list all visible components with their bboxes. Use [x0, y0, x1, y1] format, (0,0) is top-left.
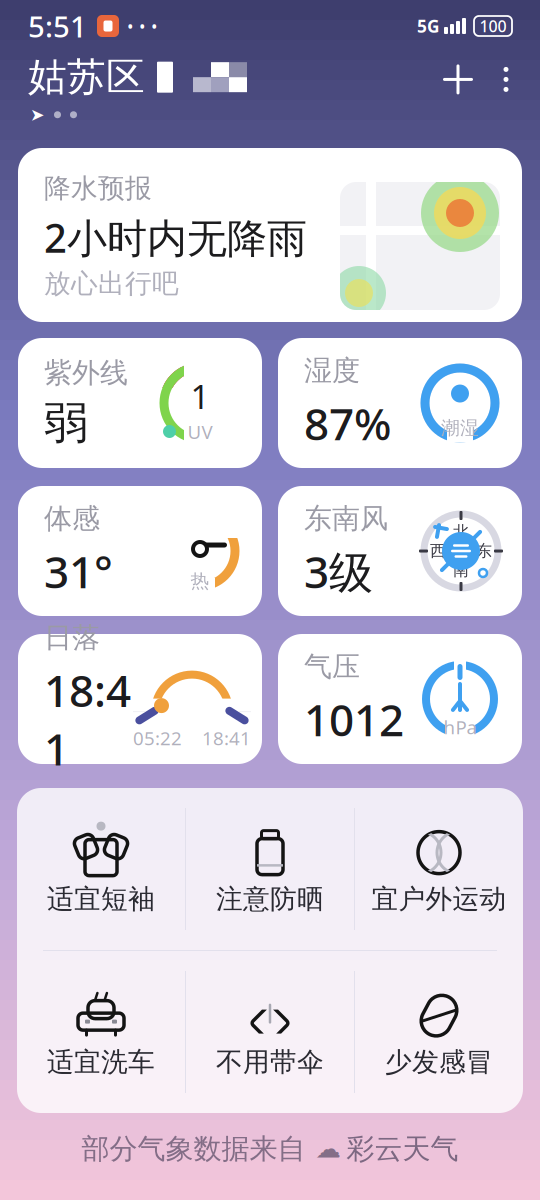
button[interactable]: 日落 [18, 634, 262, 764]
staticText: 北 [453, 522, 469, 542]
staticText: 31° [44, 542, 113, 600]
staticText: 100 [479, 15, 506, 37]
button[interactable]: 紫外线 [18, 338, 262, 468]
staticText: 热 [190, 569, 209, 592]
staticText: 弱 [44, 396, 88, 450]
staticText: 体感 [44, 502, 100, 536]
staticText: • • • [127, 14, 158, 37]
button[interactable]: 注意防晒 [186, 788, 354, 950]
staticText: 东南风 [304, 502, 388, 536]
staticText: 87% [304, 394, 391, 452]
staticText: 彩云天气 [346, 1132, 458, 1166]
staticText: 姑苏区 [28, 53, 145, 101]
staticText: 降水预报 [44, 172, 152, 205]
staticText: 日落 [44, 620, 100, 655]
button[interactable]: More options [484, 53, 528, 105]
staticText: 注意防晒 [216, 883, 324, 915]
button[interactable]: 气压 [278, 634, 522, 764]
staticText: hPa [443, 715, 476, 739]
button[interactable]: 湿度 [278, 338, 522, 468]
staticText: 东 [476, 541, 492, 561]
staticText: 18:41 [202, 726, 251, 750]
button[interactable]: 适宜洗车 [17, 951, 185, 1113]
staticText: 18:41 [44, 661, 131, 778]
staticText: 2小时内无降雨 [44, 211, 307, 264]
staticText: 潮湿 [441, 416, 479, 439]
button[interactable]: 适宜短袖 [17, 788, 185, 950]
staticText: 南 [453, 560, 469, 580]
button[interactable]: 体感 [18, 486, 262, 616]
staticText: 1012 [304, 690, 404, 748]
staticText: 1 [190, 374, 209, 418]
staticText: 气压 [304, 650, 360, 684]
button[interactable]: 东南风 [278, 486, 522, 616]
staticText: 适宜短袖 [47, 883, 155, 915]
staticText: 部分气象数据来自 [81, 1132, 305, 1166]
button[interactable]: ☁ [315, 1132, 458, 1166]
button[interactable]: Add city [432, 53, 484, 105]
button[interactable]: 宜户外运动 [355, 788, 523, 950]
staticText: ➤ [30, 105, 45, 125]
button[interactable]: 不用带伞 [186, 951, 354, 1113]
button[interactable]: 降水预报 [18, 148, 522, 322]
staticText: 3级 [304, 542, 373, 600]
staticText: ☁ [315, 1134, 340, 1163]
staticText: 湿度 [304, 354, 360, 388]
staticText: 宜户外运动 [371, 883, 506, 915]
staticText: 5:51 [28, 6, 87, 45]
button[interactable]: 少发感冒 [355, 951, 523, 1113]
staticText: 5G [417, 14, 440, 37]
staticText: 紫外线 [44, 356, 128, 390]
staticText: 西 [430, 541, 446, 561]
staticText: 放心出行吧 [44, 267, 179, 300]
staticText: UV [187, 419, 212, 444]
staticText: 不用带伞 [216, 1046, 324, 1078]
staticText: 适宜洗车 [47, 1046, 155, 1078]
staticText: 少发感冒 [385, 1046, 493, 1078]
staticText: 05:22 [133, 726, 182, 750]
